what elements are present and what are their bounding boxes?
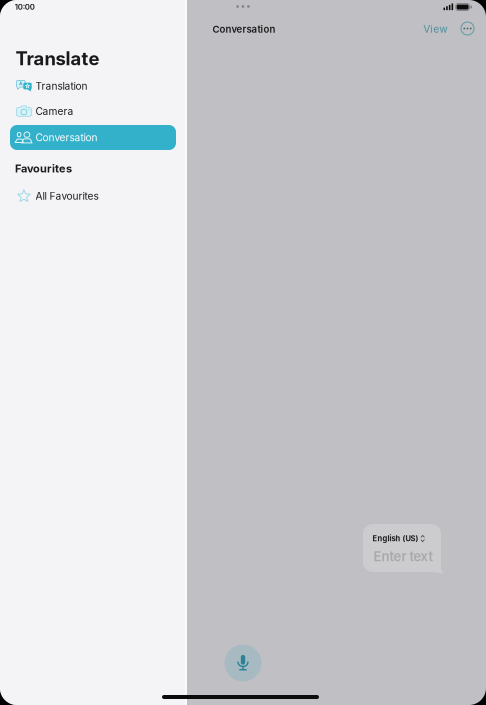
- staticText: Conversation: [35, 131, 97, 144]
- staticText: Translate: [15, 47, 99, 70]
- staticText: Favourites: [15, 162, 72, 175]
- staticText: Translation: [35, 80, 87, 92]
- button[interactable]: View: [420, 20, 451, 38]
- staticText: All Favourites: [35, 190, 98, 202]
- button[interactable]: All Favourites: [10, 183, 176, 208]
- button[interactable]: More: [456, 17, 478, 39]
- button[interactable]: Conversation: [10, 125, 176, 150]
- staticText: English (US): [372, 534, 418, 543]
- staticText: View: [423, 23, 448, 35]
- staticText: Camera: [35, 105, 73, 117]
- button[interactable]: Camera: [10, 99, 176, 124]
- button[interactable]: Record: [224, 644, 261, 681]
- button[interactable]: Translation: [10, 73, 176, 98]
- staticText: Enter text: [373, 548, 433, 564]
- staticText: 10:00: [15, 2, 35, 12]
- staticText: Conversation: [212, 23, 275, 35]
